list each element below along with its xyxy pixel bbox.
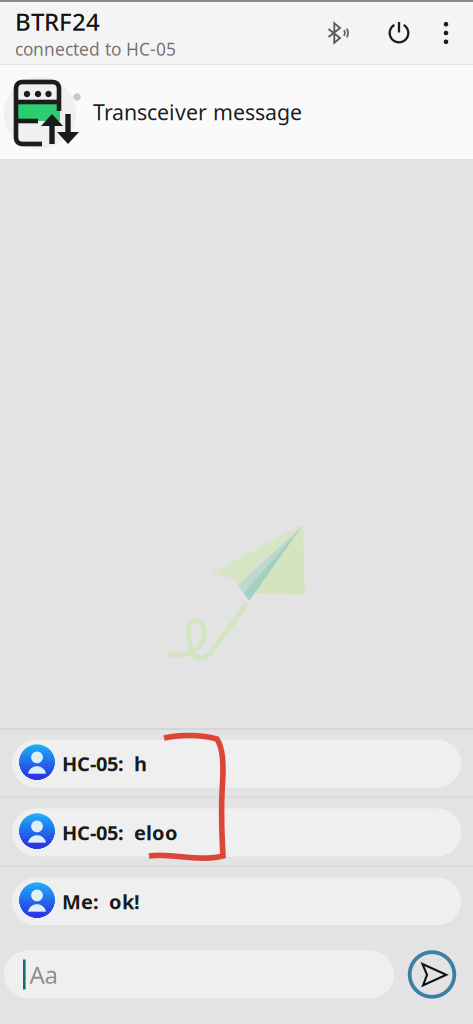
button[interactable]: Send xyxy=(406,948,458,1000)
staticText: HC-05: h xyxy=(62,750,147,777)
button[interactable]: Transceiver message xyxy=(0,65,473,159)
staticText: HC-05: eloo xyxy=(62,819,178,846)
button[interactable]: Power xyxy=(375,11,423,55)
staticText: Me: ok! xyxy=(62,888,140,915)
button[interactable]: Aa xyxy=(4,950,394,998)
button[interactable]: Bluetooth xyxy=(305,11,375,55)
staticText: Aa xyxy=(30,959,58,990)
staticText: BTRF24 xyxy=(15,6,100,37)
staticText: connected to HC-05 xyxy=(15,37,176,60)
button[interactable]: Me: ok! xyxy=(12,877,461,925)
button[interactable]: HC-05: eloo xyxy=(12,808,461,856)
button[interactable]: More options xyxy=(423,11,469,55)
staticText: Transceiver message xyxy=(93,98,302,126)
button[interactable]: HC-05: h xyxy=(12,739,461,787)
